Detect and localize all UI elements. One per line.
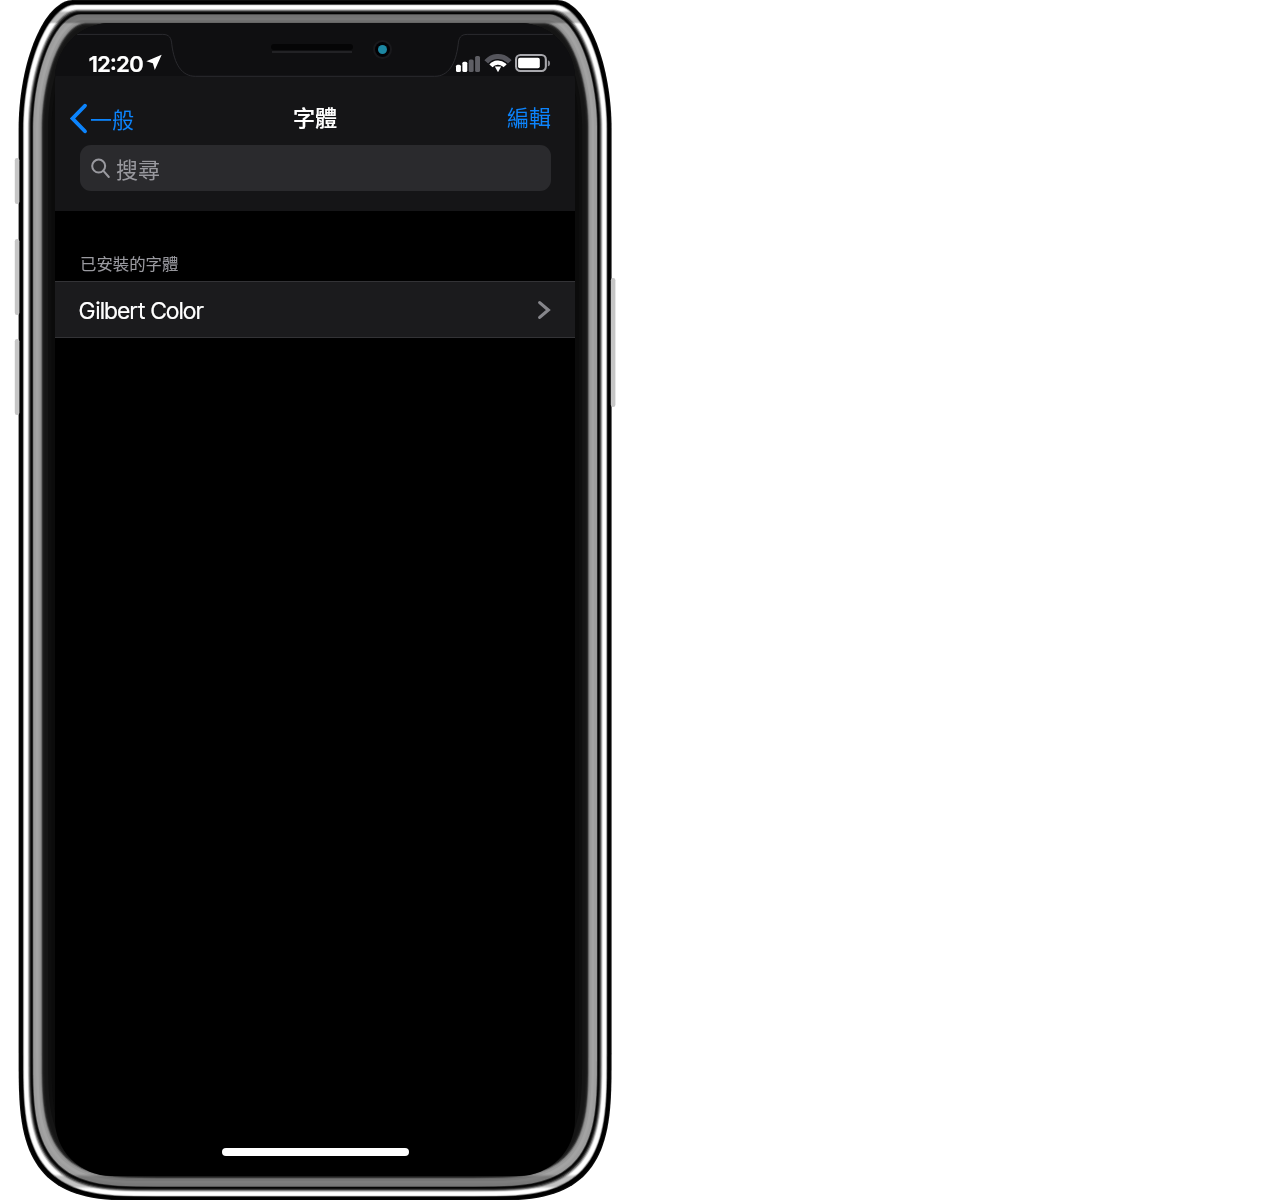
staticText: Gilbert Color	[79, 297, 204, 325]
button[interactable]: 搜尋	[80, 145, 551, 191]
button[interactable]: 一般	[63, 97, 142, 139]
other: Battery	[515, 54, 550, 72]
button[interactable]: 編輯	[500, 93, 559, 139]
other: Location in use	[146, 54, 162, 70]
staticText: 12:20	[89, 51, 144, 78]
staticText: 字體	[293, 100, 338, 132]
staticText: 一般	[90, 102, 135, 134]
staticText: 已安裝的字體	[80, 251, 179, 275]
button[interactable]: Gilbert Color	[55, 281, 575, 338]
staticText: 搜尋	[116, 152, 161, 184]
other: Cellular signal	[456, 56, 480, 72]
other: Wi-Fi	[487, 54, 509, 72]
